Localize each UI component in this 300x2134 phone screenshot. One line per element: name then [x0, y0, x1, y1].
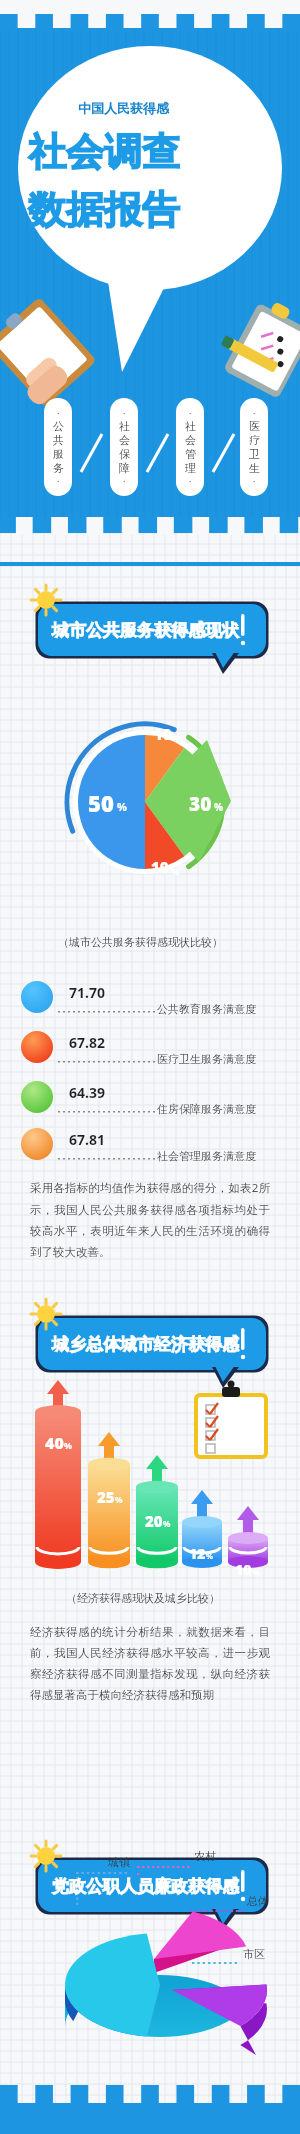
staticText: 障: [119, 461, 130, 475]
staticText: ·: [57, 407, 60, 419]
staticText: 71.70: [69, 983, 105, 1002]
button[interactable]: [18, 1085, 282, 1127]
button[interactable]: 经济获得感柱状图: [25, 1380, 275, 1580]
button[interactable]: [18, 1035, 282, 1077]
staticText: 经济获得感的统计分析结果，就数据来看，目前，我国人民经济获得感水平较高，进一步观…: [30, 1625, 270, 1702]
staticText: 理: [185, 461, 196, 475]
staticText: 社会管理服务满意度: [157, 1149, 256, 1163]
staticText: 市区: [243, 1947, 265, 1961]
staticText: 卫: [249, 447, 260, 461]
staticText: 10: [235, 1560, 252, 1579]
staticText: ·: [189, 407, 192, 419]
staticText: %: [163, 1518, 171, 1529]
staticText: 10: [151, 857, 169, 877]
button[interactable]: 城乡总体城市经济获得感: [38, 1318, 266, 1370]
staticText: 保: [119, 447, 130, 461]
staticText: 数据报告: [28, 186, 180, 234]
staticText: 社: [185, 419, 196, 433]
staticText: 20: [145, 1511, 163, 1531]
button[interactable]: ·: [240, 398, 268, 496]
staticText: 城市公共服务获得感现状: [52, 620, 239, 641]
staticText: ·: [189, 475, 192, 487]
staticText: %: [174, 732, 183, 744]
staticText: 疗: [249, 433, 260, 447]
staticText: 生: [249, 461, 260, 475]
staticText: 城镇: [108, 1855, 130, 1869]
staticText: 社: [119, 419, 130, 433]
staticText: ·: [57, 475, 60, 487]
button[interactable]: 城市公共服务获得感饼图: [10, 670, 290, 940]
staticText: 50: [88, 788, 114, 818]
staticText: 城乡总体城市经济获得感: [52, 1334, 239, 1355]
staticText: 67.82: [69, 1033, 105, 1052]
staticText: 中国人民获得感: [78, 100, 169, 116]
staticText: ·: [253, 475, 256, 487]
staticText: 医疗卫生服务满意度: [157, 1052, 256, 1066]
staticText: 住房保障服务满意度: [157, 1102, 256, 1116]
staticText: %: [117, 799, 127, 814]
staticText: 总体: [247, 1894, 269, 1908]
button[interactable]: 城市公共服务获得感现状: [38, 604, 266, 656]
staticText: 党政公职人员廉政获得感: [52, 1876, 239, 1897]
staticText: 67.81: [69, 1130, 105, 1149]
staticText: 农村: [194, 1849, 216, 1863]
button[interactable]: ·: [176, 398, 204, 496]
staticText: ·: [253, 407, 256, 419]
staticText: 社会调查: [28, 128, 180, 176]
staticText: 会: [185, 433, 196, 447]
staticText: 会: [119, 433, 130, 447]
staticText: ·: [123, 407, 126, 419]
button[interactable]: ·: [110, 398, 138, 496]
staticText: 医: [249, 419, 260, 433]
staticText: 管: [185, 447, 196, 461]
staticText: %: [214, 800, 224, 814]
button[interactable]: [18, 985, 282, 1027]
staticText: 30: [189, 791, 212, 817]
staticText: （城市公共服务获得感现状比较）: [58, 935, 223, 949]
button[interactable]: 党政公职人员廉政获得感: [38, 1860, 266, 1912]
staticText: （经济获得感现状及城乡比较）: [66, 1591, 220, 1605]
staticText: 40: [45, 1432, 64, 1454]
staticText: 12: [189, 1544, 206, 1563]
staticText: %: [171, 865, 180, 877]
staticText: 服: [53, 447, 64, 461]
staticText: 25: [97, 1487, 115, 1507]
staticText: 采用各指标的均值作为获得感的得分，如表2所示，我国人民公共服务获得感各项指标均处…: [30, 1180, 270, 1259]
staticText: %: [64, 1440, 72, 1452]
staticText: 公共教育服务满意度: [157, 1002, 256, 1016]
staticText: %: [252, 1567, 259, 1577]
staticText: %: [206, 1551, 213, 1561]
staticText: 公: [53, 419, 64, 433]
staticText: 64.39: [69, 1083, 105, 1102]
staticText: 10: [154, 724, 172, 744]
button[interactable]: 廉政获得感立体饼图: [40, 1920, 270, 2060]
staticText: %: [115, 1494, 123, 1505]
button[interactable]: [18, 1132, 282, 1174]
staticText: 务: [53, 461, 64, 475]
staticText: 共: [53, 433, 64, 447]
button[interactable]: ·: [44, 398, 72, 496]
staticText: ·: [123, 475, 126, 487]
